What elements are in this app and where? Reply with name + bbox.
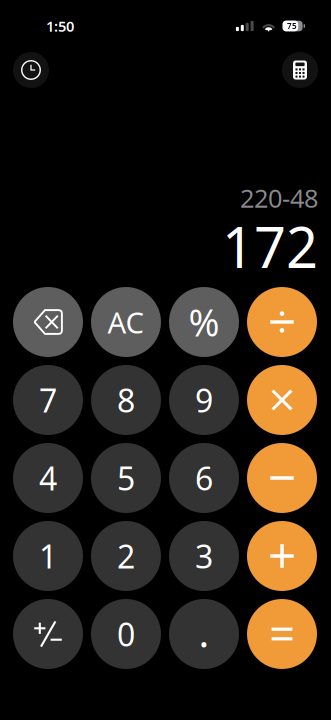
button[interactable]: 7: [13, 365, 83, 435]
staticText: 5: [117, 457, 135, 499]
button[interactable]: Multiply: [247, 365, 317, 435]
button[interactable]: .: [169, 599, 239, 669]
button[interactable]: 9: [169, 365, 239, 435]
staticText: %: [188, 297, 219, 347]
button[interactable]: 0: [91, 599, 161, 669]
staticText: 6: [195, 457, 213, 499]
staticText: 8: [117, 379, 135, 421]
button[interactable]: AC: [91, 287, 161, 357]
staticText: 220-48: [240, 181, 318, 215]
button[interactable]: 6: [169, 443, 239, 513]
button[interactable]: Delete: [13, 287, 83, 357]
staticText: AC: [107, 302, 144, 341]
button[interactable]: Equals: [247, 599, 317, 669]
button[interactable]: 3: [169, 521, 239, 591]
staticText: 172: [222, 209, 318, 283]
button[interactable]: Toggle sign: [13, 599, 83, 669]
staticText: 2: [117, 535, 135, 577]
staticText: 75: [287, 21, 297, 31]
button[interactable]: 8: [91, 365, 161, 435]
staticText: 3: [195, 535, 213, 577]
staticText: 1:50: [46, 16, 74, 36]
staticText: 4: [39, 457, 57, 499]
button[interactable]: Divide: [247, 287, 317, 357]
staticText: 9: [195, 379, 213, 421]
staticText: 7: [39, 379, 57, 421]
button[interactable]: 2: [91, 521, 161, 591]
staticText: 1: [39, 535, 57, 577]
staticText: .: [198, 605, 209, 658]
staticText: 0: [117, 613, 135, 655]
button[interactable]: Subtract: [247, 443, 317, 513]
button[interactable]: %: [169, 287, 239, 357]
button[interactable]: History: [13, 52, 49, 88]
button[interactable]: 5: [91, 443, 161, 513]
button[interactable]: 1: [13, 521, 83, 591]
button[interactable]: Scientific calculator: [282, 52, 318, 88]
button[interactable]: 4: [13, 443, 83, 513]
button[interactable]: Add: [247, 521, 317, 591]
